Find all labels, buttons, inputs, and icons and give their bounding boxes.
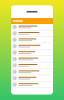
- button[interactable]: [11, 43, 53, 50]
- button[interactable]: [11, 56, 53, 62]
- button[interactable]: [11, 75, 53, 82]
- button[interactable]: [11, 62, 53, 69]
- button[interactable]: [11, 50, 53, 56]
- button[interactable]: [11, 24, 53, 30]
- button[interactable]: [11, 69, 53, 75]
- button[interactable]: [11, 30, 53, 37]
- button[interactable]: [11, 82, 53, 88]
- button[interactable]: [11, 37, 53, 43]
